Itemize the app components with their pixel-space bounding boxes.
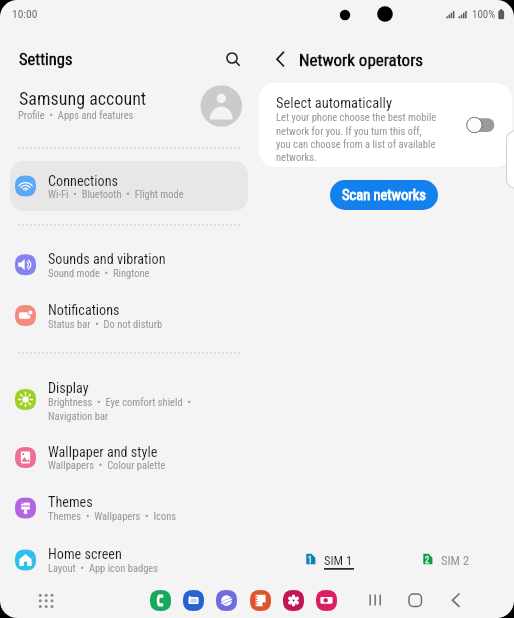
button[interactable]: Home — [404, 589, 426, 611]
button[interactable]: App — [150, 590, 171, 611]
button[interactable] — [10, 165, 248, 207]
button[interactable] — [10, 379, 248, 433]
button[interactable]: Recents — [364, 589, 386, 611]
staticText: Network operators — [299, 50, 424, 70]
staticText: Themes • Wallpapers • Icons — [48, 510, 177, 522]
staticText: Display — [48, 380, 89, 397]
staticText: Profile • Apps and features — [18, 109, 134, 121]
staticText: Brightness • Eye comfort shield • Naviga… — [48, 396, 191, 422]
button[interactable]: App — [316, 590, 337, 611]
button[interactable] — [10, 487, 248, 529]
button[interactable]: App — [283, 590, 304, 611]
staticText: Wallpaper and style — [48, 444, 158, 461]
staticText: Sound mode • Ringtone — [48, 267, 150, 279]
button[interactable]: App — [216, 590, 237, 611]
staticText: Connections — [48, 173, 119, 190]
staticText: Wi-Fi • Bluetooth • Flight mode — [48, 188, 184, 200]
staticText: Sounds and vibration — [48, 251, 166, 268]
button[interactable] — [300, 550, 360, 572]
button[interactable]: Back — [445, 589, 467, 611]
staticText: Scan networks — [342, 187, 426, 204]
staticText: 1 — [308, 555, 313, 565]
button[interactable] — [10, 539, 248, 581]
staticText: Notifications — [48, 302, 120, 319]
staticText: Wallpapers • Colour palette — [48, 459, 166, 471]
staticText: Themes — [48, 494, 93, 511]
button[interactable]: Scan networks — [330, 180, 438, 210]
button[interactable]: Select automatically — [466, 116, 501, 135]
button[interactable] — [10, 244, 248, 286]
staticText: SIM 1 — [324, 553, 353, 568]
button[interactable] — [10, 295, 248, 337]
button[interactable] — [417, 550, 477, 572]
button[interactable] — [10, 161, 248, 211]
staticText: Status bar • Do not disturb — [48, 318, 163, 330]
staticText: Samsung account — [19, 88, 147, 109]
button[interactable]: Search — [221, 47, 244, 70]
button[interactable]: App — [183, 590, 204, 611]
button[interactable]: Back — [270, 47, 294, 71]
staticText: Settings — [19, 50, 73, 69]
staticText: Select automatically — [276, 95, 392, 112]
button[interactable] — [259, 83, 512, 167]
staticText: Layout • App icon badges — [48, 562, 159, 574]
staticText: Let your phone choose the best mobile ne… — [276, 111, 437, 163]
staticText: SIM 2 — [441, 553, 470, 568]
staticText: 2 — [425, 555, 430, 565]
staticText: 100% — [472, 8, 496, 21]
staticText: 10:00 — [12, 7, 38, 20]
button[interactable]: Apps — [34, 589, 56, 611]
button[interactable] — [10, 85, 248, 127]
button[interactable]: App — [250, 590, 271, 611]
staticText: Home screen — [48, 546, 122, 563]
button[interactable] — [10, 437, 248, 479]
